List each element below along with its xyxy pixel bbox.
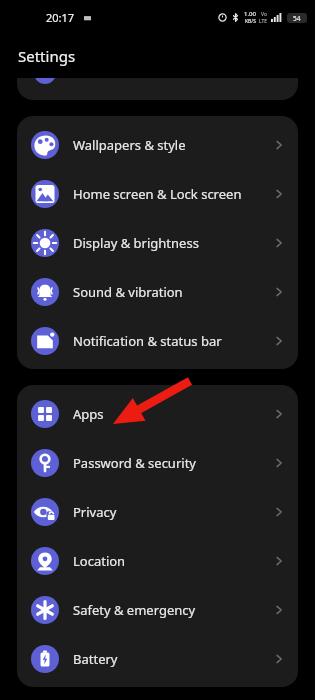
button[interactable]: Battery <box>17 634 298 683</box>
button[interactable]: Safety & emergency <box>17 585 298 634</box>
staticText: Settings <box>18 46 76 66</box>
button[interactable] <box>17 78 298 100</box>
staticText: KB/S <box>245 18 256 25</box>
staticText: Password & security <box>73 454 272 472</box>
button[interactable]: Apps <box>17 389 298 438</box>
staticText: Privacy <box>73 503 272 521</box>
staticText: 20:17 <box>46 10 75 25</box>
staticText: LTE <box>259 18 268 25</box>
staticText: Wallpapers & style <box>73 136 272 154</box>
staticText: Safety & emergency <box>73 601 272 619</box>
button[interactable]: Privacy <box>17 487 298 536</box>
button[interactable]: Display & brightness <box>17 218 298 267</box>
staticText: 54 <box>293 14 301 23</box>
staticText: Home screen & Lock screen <box>73 185 272 203</box>
button[interactable]: Location <box>17 536 298 585</box>
staticText: Location <box>73 552 272 570</box>
button[interactable]: Home screen & Lock screen <box>17 169 298 218</box>
staticText: Display & brightness <box>73 234 272 252</box>
button[interactable]: Notification & status bar <box>17 316 298 365</box>
staticText: Vo <box>261 11 267 18</box>
button[interactable]: Sound & vibration <box>17 267 298 316</box>
staticText: Sound & vibration <box>73 283 272 301</box>
staticText: Notification & status bar <box>73 332 272 350</box>
button[interactable]: Wallpapers & style <box>17 120 298 169</box>
staticText: 1.00 <box>244 10 256 18</box>
staticText: Battery <box>73 650 272 668</box>
staticText: Apps <box>73 405 272 423</box>
button[interactable]: Password & security <box>17 438 298 487</box>
